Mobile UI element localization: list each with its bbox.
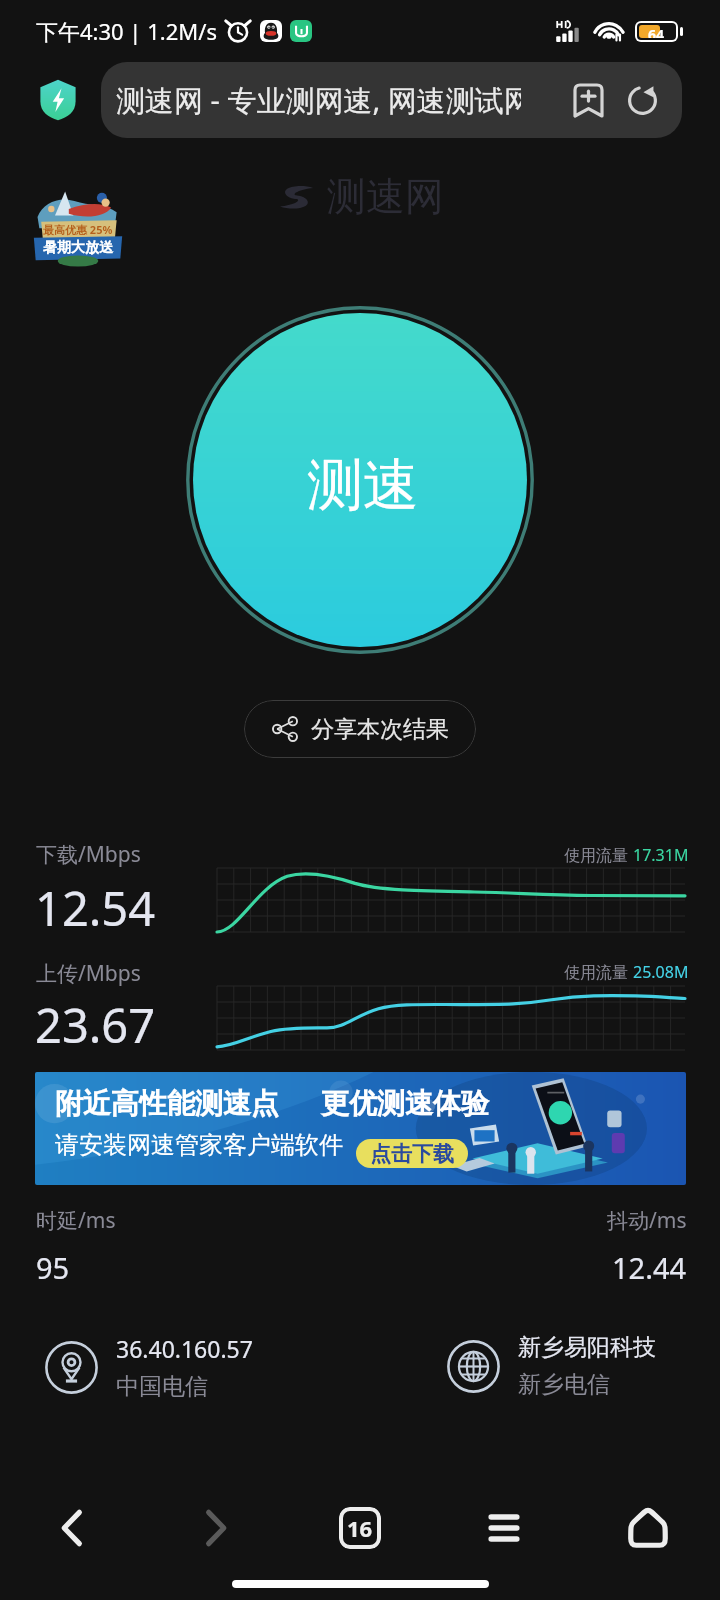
staticText: 测速网 - 专业测网速, 网速测试网 [116,80,521,120]
staticText: 附近高性能测速点 [55,1086,279,1121]
button[interactable]: 36.40.160.57 [45,1333,253,1401]
staticText: 64 [648,25,665,38]
staticText: 使用流量 [564,961,633,983]
staticText: 36.40.160.57 [116,1333,253,1364]
staticText: 23.67 [35,993,156,1057]
staticText: 更优测速体验 [321,1086,489,1121]
button[interactable]: 分享本次结果 [244,700,476,758]
staticText: 分享本次结果 [311,715,449,744]
button[interactable]: Download app ad [35,1072,686,1185]
staticText: 点击下载 [370,1141,454,1167]
button[interactable]: Home [576,1476,720,1580]
staticText: 12.54 [35,876,156,940]
staticText: 95 [36,1248,70,1287]
staticText: 请安装网速管家客户端软件 [55,1130,343,1160]
button[interactable]: Tabs [288,1476,432,1580]
staticText: 暑期大放送 [43,239,113,257]
staticText: 最高优惠 25% [43,222,113,237]
staticText: 抖动/ms [607,1206,687,1235]
staticText: 下午4:30 | 1.2M/s [36,16,217,46]
button[interactable]: Menu [432,1476,576,1580]
staticText: 17.31M [633,844,689,866]
button[interactable]: Add bookmark [561,73,615,127]
staticText: 12.44 [612,1248,687,1287]
button[interactable]: Back [0,1476,144,1580]
staticText: 新乡电信 [518,1370,610,1399]
staticText: 中国电信 [116,1372,208,1401]
button[interactable]: Site security [36,77,80,122]
staticText: 上传/Mbps [36,959,141,988]
staticText: 时延/ms [36,1206,116,1235]
button[interactable]: Forward [144,1476,288,1580]
staticText: 25.08M [633,961,689,983]
staticText: 新乡易阳科技 [518,1333,656,1362]
button[interactable]: 新乡易阳科技 [447,1333,656,1399]
button[interactable]: Summer promotion [32,185,124,265]
staticText: 下载/Mbps [36,840,141,869]
staticText: 测速网 [327,172,444,221]
staticText: 使用流量 [564,844,633,866]
button[interactable]: 测速 [193,313,527,647]
button[interactable]: 测速网 - 专业测网速, 网速测试网 [101,62,682,138]
button[interactable]: Refresh [615,73,669,127]
staticText: 16 [347,1513,373,1543]
button[interactable]: 点击下载 [356,1139,468,1168]
staticText: 测速 [307,450,419,521]
